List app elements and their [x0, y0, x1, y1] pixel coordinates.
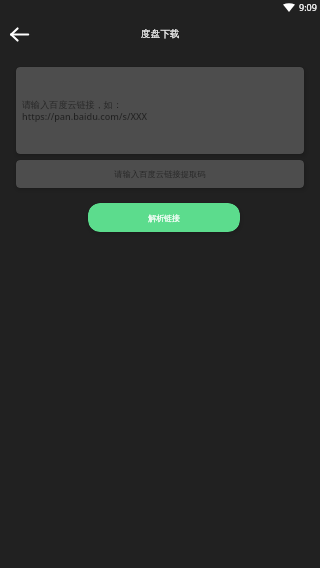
button[interactable]: Back [6, 21, 32, 47]
button[interactable]: 解析链接 [88, 203, 240, 232]
staticText: 9:09 [299, 1, 317, 13]
staticText: 度盘下载 [141, 28, 180, 40]
staticText: 解析链接 [148, 213, 180, 223]
button[interactable]: 请输入百度云链接提取码 [16, 160, 304, 188]
staticText: 请输入百度云链接，如： https://pan.baidu.com/s/XXX [22, 99, 148, 123]
button[interactable]: 请输入百度云链接，如： https://pan.baidu.com/s/XXX [16, 67, 304, 154]
staticText: 请输入百度云链接提取码 [114, 169, 206, 179]
